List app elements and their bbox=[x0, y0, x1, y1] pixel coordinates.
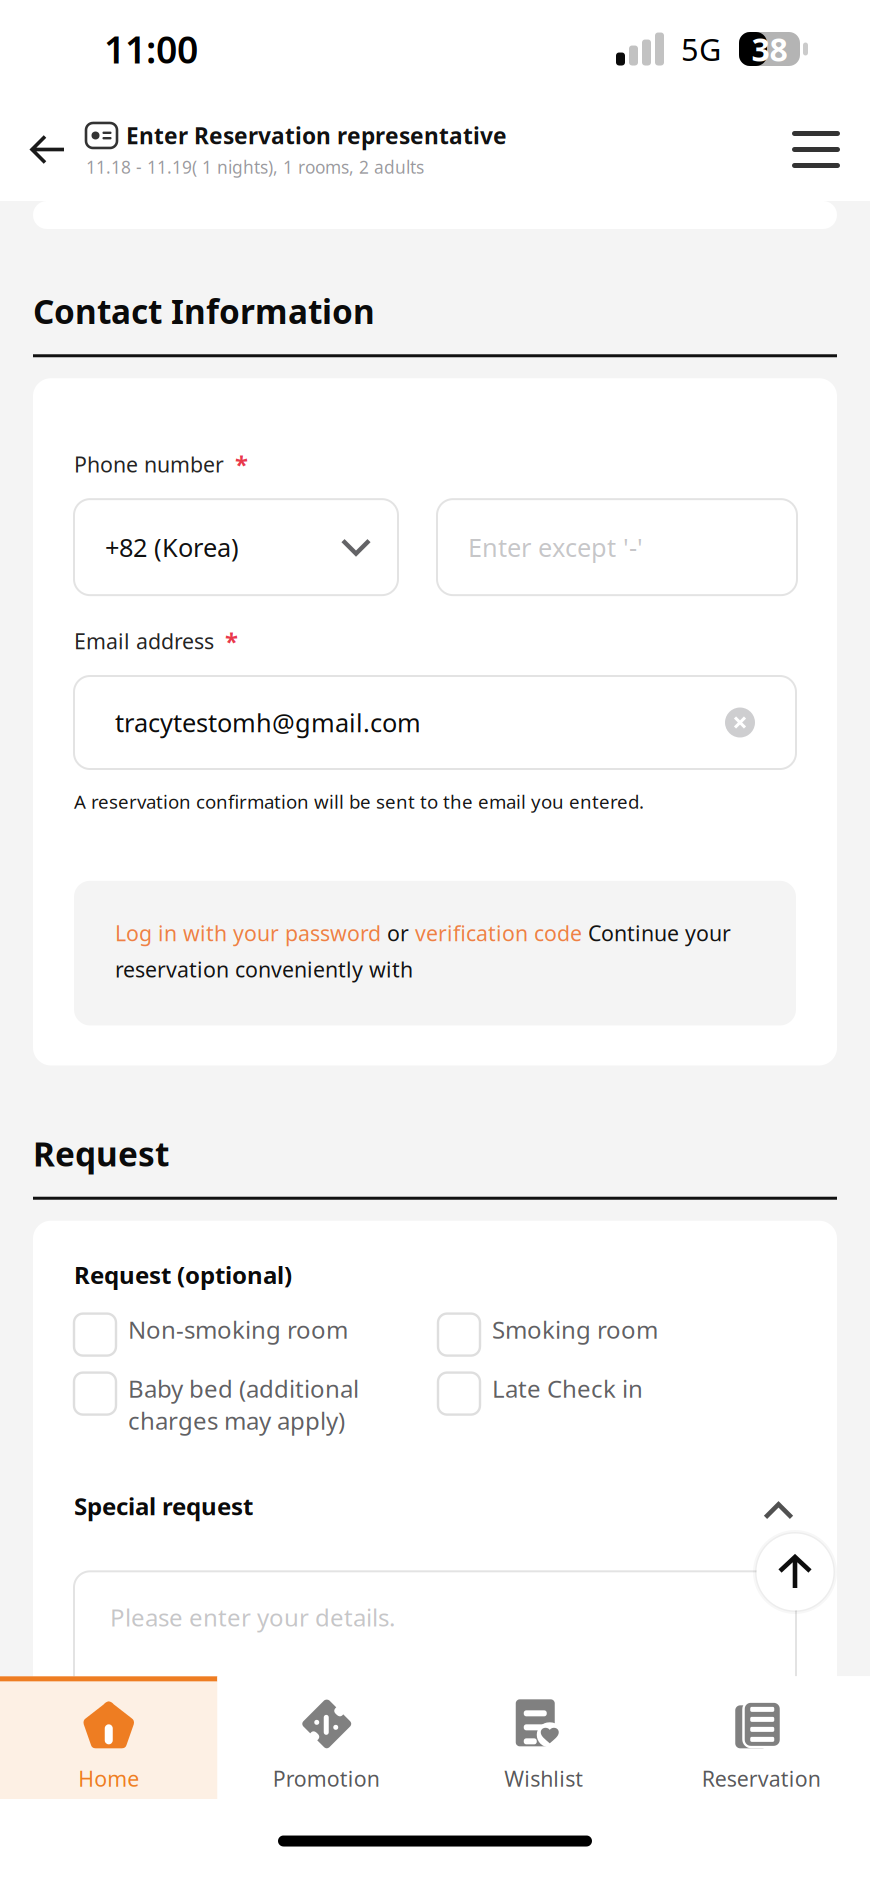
button[interactable]: Late Check in bbox=[438, 1371, 722, 1415]
staticText: Promotion bbox=[273, 1764, 380, 1793]
button[interactable]: Enter except '-' bbox=[437, 499, 797, 595]
staticText: Continue your bbox=[582, 919, 731, 947]
staticText: verification code bbox=[415, 919, 582, 947]
staticText: * bbox=[235, 448, 248, 480]
staticText: A reservation confirmation will be sent … bbox=[74, 789, 644, 814]
staticText: Late Check in bbox=[492, 1373, 643, 1404]
staticText: 5G bbox=[681, 29, 721, 69]
staticText: Please enter your details. bbox=[110, 1601, 395, 1633]
staticText: Smoking room bbox=[492, 1314, 658, 1345]
button[interactable]: Non-smoking room bbox=[74, 1312, 408, 1356]
staticText: tracytestomh@gmail.com bbox=[115, 706, 421, 739]
button[interactable]: Reservation bbox=[652, 1676, 870, 1807]
button[interactable]: Scroll to top bbox=[753, 1530, 837, 1614]
button[interactable]: Wishlist bbox=[435, 1676, 652, 1807]
staticText: Enter Reservation representative bbox=[126, 120, 507, 150]
staticText: or bbox=[381, 919, 415, 947]
staticText: Request bbox=[33, 1131, 169, 1176]
staticText: Request (optional) bbox=[74, 1259, 292, 1291]
staticText: Baby bed (additional charges may apply) bbox=[128, 1373, 359, 1436]
staticText: Contact Information bbox=[33, 289, 375, 333]
staticText: * bbox=[225, 625, 238, 657]
button[interactable]: Promotion bbox=[217, 1676, 435, 1807]
staticText: 11:00 bbox=[104, 24, 198, 74]
staticText: Enter except '-' bbox=[468, 530, 643, 564]
staticText: Non-smoking room bbox=[128, 1314, 348, 1345]
staticText: reservation conveniently with bbox=[115, 955, 413, 983]
button[interactable]: tracytestomh@gmail.com bbox=[74, 676, 796, 769]
staticText: +82 (Korea) bbox=[105, 530, 239, 564]
button[interactable]: Smoking room bbox=[438, 1312, 722, 1356]
staticText: Home bbox=[78, 1764, 139, 1793]
staticText: Special request bbox=[74, 1490, 253, 1522]
button[interactable]: +82 (Korea) bbox=[74, 499, 398, 595]
button[interactable]: Home bbox=[0, 1676, 217, 1807]
staticText: Email address bbox=[74, 627, 214, 655]
button[interactable]: Back bbox=[10, 104, 86, 194]
staticText: Reservation bbox=[702, 1764, 821, 1793]
button[interactable]: Collapse special request bbox=[743, 1484, 796, 1527]
button[interactable]: Baby bed (additional charges may apply) bbox=[74, 1371, 408, 1436]
button[interactable]: Please enter your details. bbox=[74, 1571, 796, 1731]
staticText: Wishlist bbox=[504, 1764, 583, 1793]
button[interactable]: Menu bbox=[776, 104, 856, 194]
staticText: 38 bbox=[751, 28, 787, 70]
staticText: 11.18 - 11.19( 1 nights), 1 rooms, 2 adu… bbox=[86, 155, 424, 178]
staticText: Phone number bbox=[74, 450, 224, 478]
staticText: Log in with your password bbox=[115, 919, 381, 947]
